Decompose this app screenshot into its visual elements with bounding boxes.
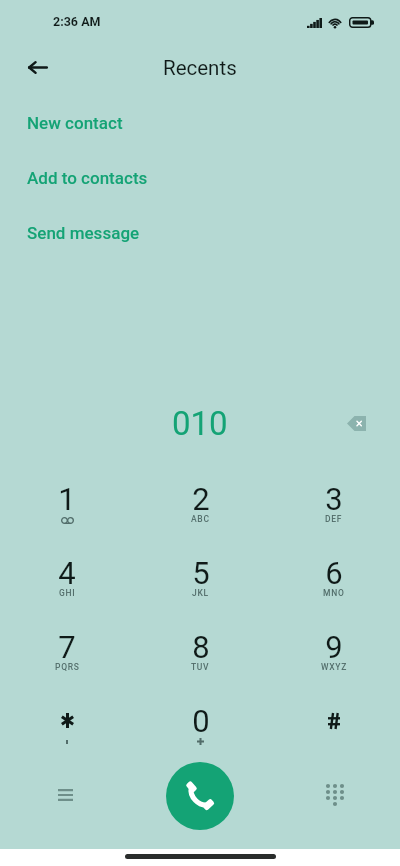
staticText: 1	[58, 481, 76, 517]
staticText: DEF	[325, 514, 343, 524]
button[interactable]: 2	[134, 479, 267, 552]
staticText: Add to contacts	[27, 168, 148, 188]
staticText: ABC	[191, 514, 210, 524]
button[interactable]: 9	[267, 627, 400, 700]
staticText: PQRS	[55, 662, 80, 672]
button[interactable]	[267, 701, 400, 774]
button[interactable]: Call log	[43, 773, 87, 817]
staticText: WXYZ	[321, 662, 347, 672]
button[interactable]: Add to contacts	[0, 150, 400, 205]
staticText: MNO	[323, 588, 345, 598]
staticText: JKL	[192, 588, 209, 598]
staticText: 2:36 AM	[53, 14, 101, 29]
button[interactable]: 8	[134, 627, 267, 700]
button[interactable]: 5	[134, 553, 267, 626]
button[interactable]: New contact	[0, 95, 400, 150]
button[interactable]: 4	[0, 553, 134, 626]
button[interactable]: 7	[0, 627, 134, 700]
staticText: 8	[192, 629, 210, 665]
button[interactable]	[0, 701, 134, 774]
staticText: 5	[192, 555, 210, 591]
staticText: Recents	[163, 56, 237, 80]
staticText: Send message	[27, 223, 140, 243]
staticText: 010	[172, 404, 228, 443]
staticText: GHI	[59, 588, 76, 598]
button[interactable]: Back	[16, 45, 60, 89]
staticText: 7	[58, 629, 76, 665]
staticText: New contact	[27, 113, 123, 133]
button[interactable]: Send message	[0, 205, 400, 260]
staticText: 2	[192, 481, 210, 517]
button[interactable]: 0	[134, 701, 267, 774]
button[interactable]: Dialpad	[313, 773, 357, 817]
button[interactable]: 3	[267, 479, 400, 552]
staticText: 9	[325, 629, 343, 665]
button[interactable]: Backspace	[334, 401, 378, 445]
staticText: 6	[325, 555, 343, 591]
button[interactable]: 1	[0, 479, 134, 552]
button[interactable]: Call	[166, 762, 234, 830]
button[interactable]: 6	[267, 553, 400, 626]
staticText: TUV	[191, 662, 210, 672]
staticText: 0	[192, 703, 210, 739]
staticText: 4	[58, 555, 76, 591]
staticText: 3	[325, 481, 343, 517]
